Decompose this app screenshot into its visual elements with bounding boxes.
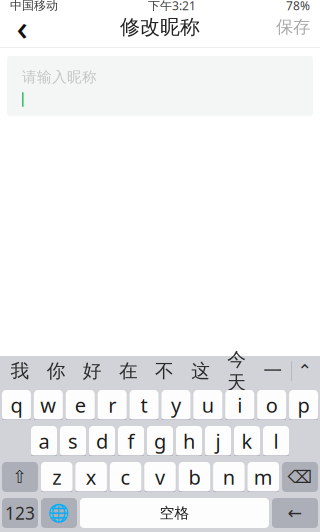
staticText: r xyxy=(108,392,116,418)
button[interactable]: 展开候选词 xyxy=(292,356,318,386)
button[interactable]: a xyxy=(31,426,57,456)
button[interactable]: j xyxy=(205,426,231,456)
staticText: q xyxy=(10,392,22,418)
staticText: 下午3:21 xyxy=(148,0,196,13)
staticText: ⌃ xyxy=(297,361,312,381)
staticText: l xyxy=(273,428,278,454)
button[interactable]: s xyxy=(60,426,86,456)
staticText: ← xyxy=(287,503,302,523)
staticText: c xyxy=(121,464,131,490)
button[interactable]: m xyxy=(248,462,279,492)
button[interactable]: u xyxy=(193,390,222,420)
staticText: v xyxy=(155,464,165,490)
staticText: a xyxy=(38,428,49,454)
staticText: 今天 xyxy=(227,348,246,394)
button[interactable]: k xyxy=(234,426,260,456)
staticText: 中国移动 xyxy=(10,0,58,13)
staticText: 保存 xyxy=(276,16,310,38)
button[interactable]: f xyxy=(118,426,144,456)
staticText: h xyxy=(183,428,195,454)
button[interactable]: 数字键盘 xyxy=(2,498,38,528)
button[interactable]: Shift xyxy=(2,462,38,492)
button[interactable]: 保存 xyxy=(266,11,320,43)
staticText: f xyxy=(127,428,134,454)
staticText: ⇧ xyxy=(12,467,27,487)
staticText: b xyxy=(188,464,200,490)
staticText: p xyxy=(298,392,310,418)
button[interactable]: t xyxy=(130,390,158,420)
staticText: x xyxy=(86,464,97,490)
button[interactable]: h xyxy=(176,426,202,456)
staticText: w xyxy=(40,392,56,418)
staticText: u xyxy=(202,392,214,418)
staticText: t xyxy=(141,392,148,418)
staticText: e xyxy=(75,392,86,418)
button[interactable]: 今天 xyxy=(219,356,255,386)
staticText: o xyxy=(266,392,278,418)
staticText: ⌫ xyxy=(287,467,312,487)
staticText: ‹ xyxy=(16,4,27,50)
staticText: 78% xyxy=(286,0,310,13)
staticText: 你 xyxy=(47,359,66,382)
button[interactable]: 在 xyxy=(110,356,146,386)
button[interactable]: w xyxy=(34,390,63,420)
button[interactable]: r xyxy=(98,390,127,420)
button[interactable]: 删除 xyxy=(282,462,318,492)
staticText: 🌐 xyxy=(48,503,70,523)
staticText: 123 xyxy=(5,501,35,524)
button[interactable]: i xyxy=(225,390,254,420)
staticText: k xyxy=(241,428,252,454)
staticText: j xyxy=(215,428,220,454)
button[interactable]: 返回 xyxy=(0,11,44,43)
button[interactable]: c xyxy=(110,462,141,492)
button[interactable]: 空格 xyxy=(80,498,269,528)
button[interactable]: x xyxy=(75,462,107,492)
button[interactable]: 不 xyxy=(146,356,183,386)
staticText: y xyxy=(171,392,181,418)
staticText: 不 xyxy=(155,359,174,382)
staticText: 空格 xyxy=(159,504,189,522)
button[interactable]: 好 xyxy=(74,356,110,386)
button[interactable]: z xyxy=(41,462,72,492)
button[interactable]: n xyxy=(213,462,244,492)
button[interactable]: 你 xyxy=(38,356,74,386)
staticText: n xyxy=(223,464,235,490)
button[interactable]: l xyxy=(263,426,289,456)
staticText: 我 xyxy=(11,359,30,382)
button[interactable]: o xyxy=(257,390,286,420)
button[interactable]: e xyxy=(66,390,95,420)
staticText: 一 xyxy=(263,359,282,382)
staticText: 在 xyxy=(119,359,138,382)
staticText: 这 xyxy=(191,359,210,382)
button[interactable]: d xyxy=(89,426,115,456)
staticText: i xyxy=(237,392,242,418)
staticText: z xyxy=(52,464,61,490)
button[interactable]: 换行 xyxy=(272,498,318,528)
staticText: 请输入昵称 xyxy=(22,68,97,86)
button[interactable]: 切换键盘 xyxy=(41,498,77,528)
button[interactable]: g xyxy=(147,426,173,456)
button[interactable]: q xyxy=(2,390,31,420)
button[interactable]: 这 xyxy=(183,356,219,386)
button[interactable]: 一 xyxy=(255,356,291,386)
staticText: s xyxy=(68,428,78,454)
staticText: g xyxy=(154,428,166,454)
button[interactable]: v xyxy=(144,462,176,492)
staticText: 修改昵称 xyxy=(120,15,200,39)
button[interactable]: b xyxy=(179,462,210,492)
staticText: 好 xyxy=(83,359,102,382)
button[interactable]: y xyxy=(161,390,190,420)
button[interactable]: 我 xyxy=(2,356,38,386)
staticText: m xyxy=(254,464,273,490)
staticText: d xyxy=(96,428,108,454)
button[interactable]: p xyxy=(289,390,318,420)
